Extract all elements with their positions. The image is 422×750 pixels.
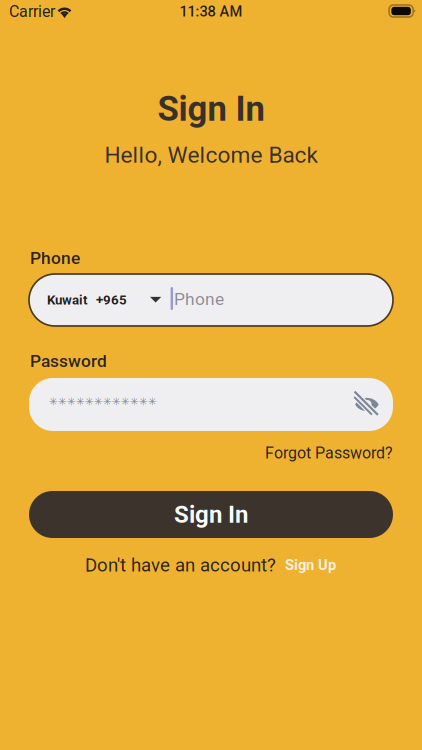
- staticText: Phone: [30, 248, 80, 268]
- staticText: Hello, Welcome Back: [104, 142, 317, 168]
- staticText: Carrier: [9, 2, 55, 21]
- staticText: Forgot Password?: [265, 444, 393, 462]
- button[interactable]: Forgot Password?: [253, 441, 393, 465]
- staticText: Kuwait: [47, 292, 88, 308]
- staticText: Sign Up: [285, 556, 336, 574]
- staticText: Phone: [174, 289, 224, 309]
- button[interactable]: Show password: [345, 382, 389, 426]
- staticText: Don't have an account?: [85, 554, 276, 576]
- button[interactable]: Sign Up: [285, 554, 341, 576]
- staticText: Sign In: [174, 500, 248, 528]
- staticText: +965: [96, 292, 127, 308]
- staticText: Password: [30, 351, 107, 371]
- staticText: Sign In: [157, 89, 264, 129]
- button[interactable]: Sign In: [29, 491, 393, 538]
- staticText: 11:38 AM: [179, 3, 242, 20]
- staticText: ✳✳✳✳✳✳✳✳✳✳✳✳: [49, 395, 157, 408]
